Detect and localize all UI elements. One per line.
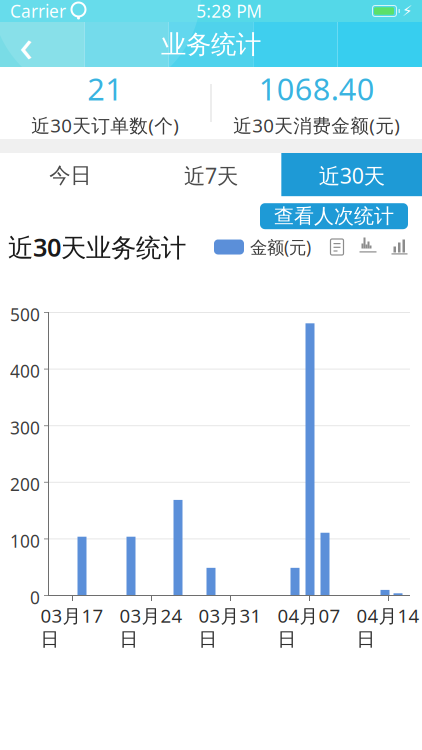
staticText: 0 <box>30 586 40 609</box>
staticText: ‹ <box>19 14 33 75</box>
staticText: 近7天 <box>184 161 238 190</box>
staticText: 5:28 PM <box>196 0 262 22</box>
staticText: 03月17日 <box>40 603 103 651</box>
staticText: 近30天订单数(个) <box>31 113 179 138</box>
staticText: ⚡︎ <box>402 3 412 19</box>
button[interactable]: Bar chart <box>377 238 408 256</box>
button[interactable]: 查看人次统计 <box>260 203 408 229</box>
staticText: 500 <box>10 303 40 326</box>
button[interactable]: Line chart <box>345 238 377 256</box>
staticText: 04月14日 <box>356 603 419 651</box>
staticText: 03月24日 <box>119 603 182 651</box>
staticText: 金额(元) <box>250 235 311 258</box>
button[interactable]: Table view <box>329 238 345 256</box>
staticText: 查看人次统计 <box>274 204 394 228</box>
staticText: 200 <box>10 473 40 496</box>
staticText: 近30天 <box>319 161 385 190</box>
staticText: 1068.40 <box>259 68 375 109</box>
staticText: 21 <box>87 68 123 109</box>
staticText: 近30天消费金额(元) <box>233 113 400 138</box>
button[interactable]: 近30天 <box>281 153 422 198</box>
button[interactable]: 近7天 <box>141 153 281 198</box>
staticText: 03月31日 <box>198 603 261 651</box>
staticText: 今日 <box>49 162 91 189</box>
staticText: 400 <box>10 360 40 383</box>
staticText: 业务统计 <box>161 29 261 60</box>
staticText: Carrier <box>10 0 66 22</box>
staticText: 100 <box>10 529 40 552</box>
staticText: 300 <box>10 416 40 439</box>
staticText: 04月07日 <box>277 603 340 651</box>
staticText: 近30天业务统计 <box>8 230 186 264</box>
button[interactable]: 今日 <box>0 153 141 198</box>
button[interactable]: Back <box>0 22 52 67</box>
